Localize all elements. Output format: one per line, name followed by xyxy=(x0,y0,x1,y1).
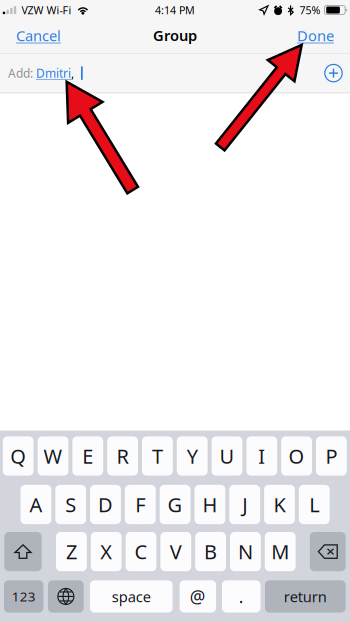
button[interactable]: B xyxy=(195,532,226,571)
button[interactable]: F xyxy=(125,485,156,524)
button[interactable]: V xyxy=(160,532,191,571)
staticText: R xyxy=(117,443,129,469)
button[interactable]: T xyxy=(142,436,173,476)
staticText: 123 xyxy=(12,588,36,605)
button[interactable]: J xyxy=(229,485,260,524)
button[interactable]: I xyxy=(246,436,277,476)
button[interactable]: @ xyxy=(180,580,216,613)
button[interactable]: Z xyxy=(56,532,87,571)
staticText: L xyxy=(309,491,319,518)
staticText: H xyxy=(202,491,217,518)
button[interactable]: Switch keyboard xyxy=(48,580,84,613)
button[interactable]: D xyxy=(90,485,121,524)
staticText: Q xyxy=(10,443,26,469)
staticText: 4:14 PM xyxy=(155,3,195,17)
staticText: X xyxy=(100,538,112,565)
staticText: W xyxy=(43,443,62,469)
staticText: O xyxy=(289,443,305,469)
button[interactable]: Add contact xyxy=(318,58,348,88)
staticText: G xyxy=(168,491,183,518)
staticText: Group xyxy=(153,26,197,45)
staticText: T xyxy=(152,443,163,469)
staticText: V xyxy=(170,538,182,565)
staticText: Y xyxy=(187,443,198,469)
staticText: space xyxy=(112,587,151,606)
staticText: D xyxy=(98,491,113,518)
button[interactable]: N xyxy=(230,532,261,571)
staticText: M xyxy=(271,538,289,565)
button[interactable]: K xyxy=(264,485,295,524)
staticText: Cancel xyxy=(16,26,61,45)
staticText: Done xyxy=(297,26,334,45)
button[interactable]: 123 xyxy=(4,580,43,613)
button[interactable]: Shift xyxy=(4,532,42,571)
staticText: return xyxy=(284,587,327,606)
button[interactable]: E xyxy=(72,436,103,476)
staticText: , xyxy=(71,65,74,81)
staticText: J xyxy=(242,491,247,518)
button[interactable]: . xyxy=(222,580,260,613)
button[interactable]: Cancel xyxy=(8,21,69,52)
button[interactable]: Q xyxy=(3,436,34,476)
staticText: A xyxy=(29,491,42,518)
button[interactable]: W xyxy=(38,436,68,476)
button[interactable]: L xyxy=(299,485,330,524)
button[interactable]: A xyxy=(20,485,51,524)
button[interactable]: S xyxy=(55,485,86,524)
staticText: E xyxy=(82,443,93,469)
button[interactable]: G xyxy=(160,485,190,524)
staticText: 75% xyxy=(299,3,320,17)
staticText: S xyxy=(65,491,76,518)
button[interactable]: X xyxy=(91,532,122,571)
staticText: Z xyxy=(66,538,77,565)
button[interactable]: Delete xyxy=(310,532,346,571)
staticText: F xyxy=(135,491,145,518)
staticText: B xyxy=(204,538,217,565)
button[interactable]: C xyxy=(126,532,156,571)
staticText: @ xyxy=(190,585,206,608)
staticText: . xyxy=(239,585,244,608)
staticText: K xyxy=(273,491,285,518)
button[interactable]: P xyxy=(316,436,347,476)
staticText: Dmitri xyxy=(36,65,71,81)
button[interactable]: return xyxy=(265,580,346,613)
button[interactable]: M xyxy=(265,532,296,571)
button[interactable]: Y xyxy=(177,436,208,476)
staticText: N xyxy=(238,538,253,565)
staticText: Add: xyxy=(8,65,36,81)
button[interactable]: Done xyxy=(289,21,342,52)
button[interactable]: O xyxy=(281,436,312,476)
button[interactable]: U xyxy=(212,436,242,476)
staticText: VZW Wi-Fi xyxy=(21,3,71,17)
staticText: I xyxy=(258,443,265,469)
button[interactable]: R xyxy=(107,436,138,476)
button[interactable]: H xyxy=(194,485,225,524)
staticText: C xyxy=(134,538,147,565)
staticText: P xyxy=(325,443,337,469)
staticText: U xyxy=(219,443,234,469)
button[interactable]: space xyxy=(90,580,173,613)
